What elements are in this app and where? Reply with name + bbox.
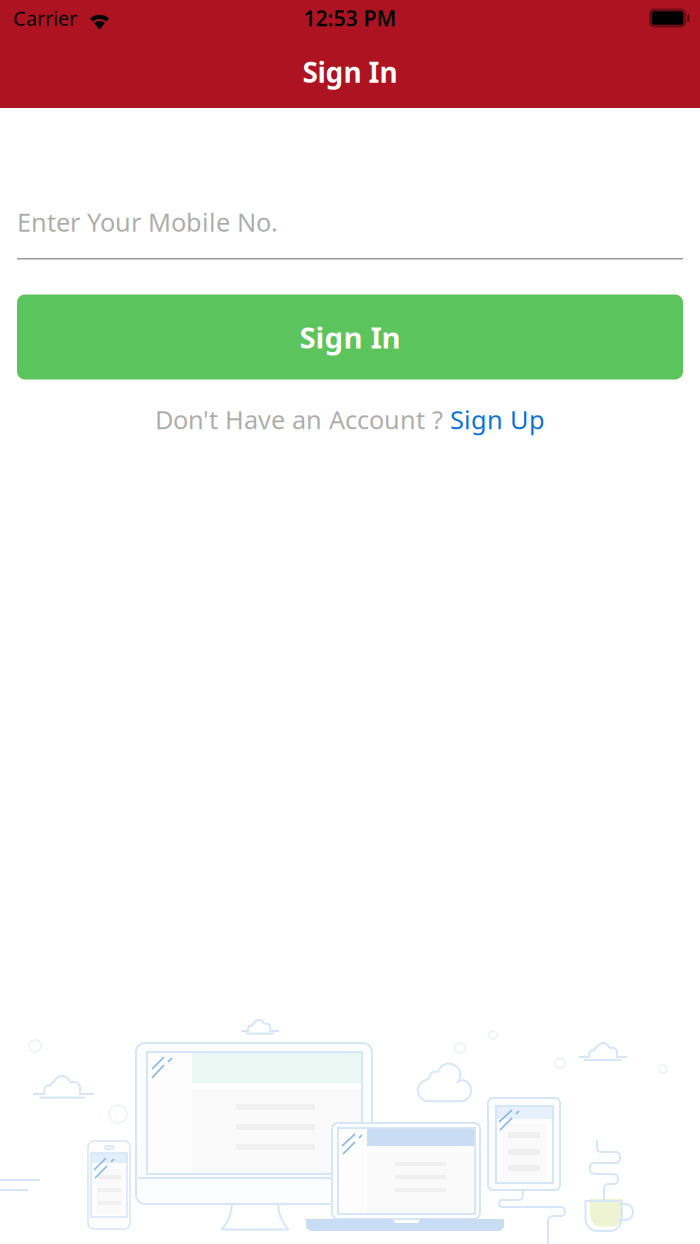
staticText: Enter Your Mobile No. bbox=[17, 205, 278, 239]
staticText: Sign In bbox=[299, 317, 400, 356]
button[interactable]: Sign In bbox=[17, 294, 683, 379]
staticText: 12:53 PM bbox=[303, 4, 396, 32]
staticText: Sign Up bbox=[450, 403, 545, 436]
staticText: Carrier bbox=[13, 5, 77, 31]
staticText: Don't Have an Account ? bbox=[155, 403, 443, 436]
staticText: Sign In bbox=[302, 53, 397, 91]
button[interactable]: Don't Have an Account ? bbox=[155, 401, 545, 437]
